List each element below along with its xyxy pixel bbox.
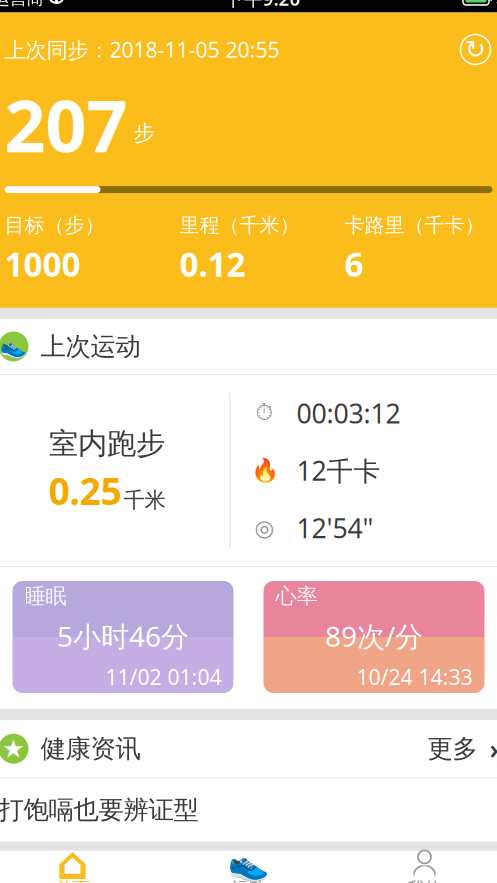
staticText: ◎ (254, 515, 274, 541)
staticText: 卡路里（千卡） (344, 213, 484, 238)
button[interactable]: 同步 (458, 32, 492, 66)
staticText: 上次同步：2018-11-05 20:55 (4, 35, 279, 64)
staticText: 5小时46分 (57, 617, 189, 655)
staticText: 运营商 (0, 0, 43, 9)
staticText: 11/02 01:04 (105, 662, 221, 691)
staticText: 步 (133, 120, 154, 146)
staticText: 👟 (0, 334, 27, 359)
staticText: ⚡︎ (494, 0, 497, 7)
staticText: 打饱嗝也要辨证型 (0, 794, 198, 825)
staticText: 207 (4, 76, 127, 172)
staticText: 1000 (4, 242, 80, 286)
staticText: ★ (2, 734, 25, 763)
staticText: ⌂ (56, 838, 88, 883)
staticText: 心率 (275, 583, 317, 609)
button[interactable]: ★ (0, 720, 497, 777)
staticText: 下午9:20 (224, 0, 300, 11)
staticText: 运动 (231, 878, 265, 883)
staticText: › (489, 731, 497, 766)
button[interactable]: 打饱嗝也要辨证型 (0, 778, 497, 841)
staticText: 首页 (55, 878, 89, 883)
staticText: 12千卡 (296, 453, 380, 488)
button[interactable]: 我的 (336, 846, 497, 883)
staticText: ↻ (465, 35, 486, 64)
staticText: 里程（千米） (179, 213, 299, 238)
staticText: 千米 (123, 487, 165, 513)
staticText: 🔥 (250, 458, 278, 483)
staticText: 0.25 (48, 466, 121, 515)
staticText: 目标（步） (4, 213, 104, 238)
staticText: 6 (344, 242, 363, 286)
staticText: 睡眠 (24, 583, 66, 609)
staticText: 我的 (407, 878, 441, 883)
staticText: 10/24 14:33 (356, 662, 472, 691)
button[interactable]: 👟 (160, 846, 336, 883)
button[interactable]: ⌂ (0, 846, 160, 883)
staticText: 12'54" (296, 510, 373, 546)
staticText: 0.12 (179, 242, 245, 286)
staticText: 健康资讯 (40, 733, 140, 764)
staticText: 上次运动 (40, 331, 140, 362)
staticText: 👟 (227, 844, 269, 882)
staticText: 00:03:12 (296, 395, 400, 431)
button[interactable]: 心率 (263, 581, 484, 693)
staticText: 89次/分 (325, 617, 423, 655)
staticText: 室内跑步 (49, 426, 165, 462)
staticText: ⏱ (255, 402, 273, 424)
staticText: 更多 (427, 733, 477, 764)
button[interactable]: 睡眠 (12, 581, 233, 693)
